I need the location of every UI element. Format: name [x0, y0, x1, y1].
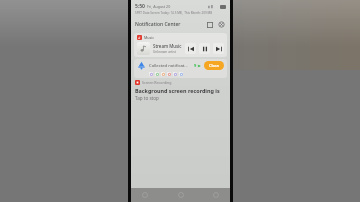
staticText: Fri, August 20 [147, 4, 171, 9]
staticText: Background screen recording is on [135, 87, 226, 94]
staticText: Collected notificat... [149, 63, 188, 69]
button[interactable]: Home [175, 189, 187, 201]
staticText: Stream Music -... [153, 43, 185, 49]
button[interactable]: Screen Recording [135, 80, 226, 101]
button[interactable]: Pause [199, 43, 210, 54]
button[interactable]: Collected notificat... [134, 59, 227, 78]
button[interactable]: Recents [210, 189, 222, 201]
staticText: 5:50 [135, 3, 145, 10]
button[interactable]: Music [134, 33, 227, 57]
staticText: Screen Recording [142, 80, 172, 85]
staticText: Music [144, 35, 155, 40]
staticText: SPRT Data Screen Today: 14.5 MB, This Mo… [135, 11, 213, 15]
button[interactable]: Clear all notifications [217, 20, 226, 29]
button[interactable]: Clean [204, 61, 224, 70]
button[interactable]: Previous track [185, 43, 196, 54]
staticText: Notification Center [135, 21, 181, 28]
staticText: 9 [194, 63, 197, 68]
staticText: Clean [209, 63, 220, 68]
button[interactable]: Back [139, 189, 151, 201]
staticText: Unknown artist [153, 50, 176, 54]
staticText: Tap to stop [135, 95, 159, 101]
button[interactable]: Next track [213, 43, 224, 54]
button[interactable]: Notification settings [205, 20, 214, 29]
